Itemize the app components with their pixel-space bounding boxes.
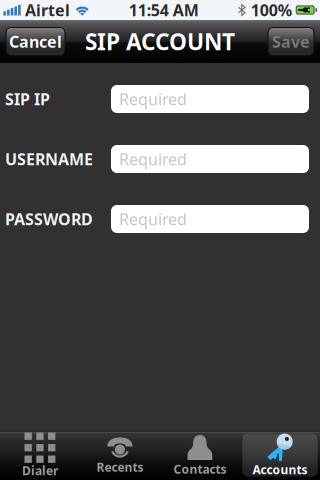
staticText: Recents xyxy=(96,459,143,475)
staticText: Save xyxy=(272,31,310,52)
staticText: Airtel xyxy=(25,0,70,21)
button[interactable]: Cancel xyxy=(6,27,65,55)
staticText: Required xyxy=(119,208,187,230)
staticText: Required xyxy=(119,148,187,170)
staticText: SIP ACCOUNT xyxy=(85,26,235,56)
staticText: Accounts xyxy=(252,461,307,477)
staticText: 100% xyxy=(251,0,292,21)
button[interactable]: Contacts xyxy=(160,430,240,480)
staticText: Required xyxy=(119,88,187,110)
staticText: Cancel xyxy=(9,31,62,52)
staticText: USERNAME xyxy=(5,148,93,170)
staticText: Contacts xyxy=(173,461,226,477)
button[interactable]: Accounts xyxy=(240,430,320,480)
staticText: 11:54 AM xyxy=(129,0,199,21)
staticText: SIP IP xyxy=(5,88,50,110)
staticText: PASSWORD xyxy=(5,208,93,230)
button[interactable]: Dialer xyxy=(0,430,80,480)
button[interactable]: Save xyxy=(268,27,314,55)
button[interactable]: Recents xyxy=(80,430,160,480)
staticText: Dialer xyxy=(22,462,58,478)
